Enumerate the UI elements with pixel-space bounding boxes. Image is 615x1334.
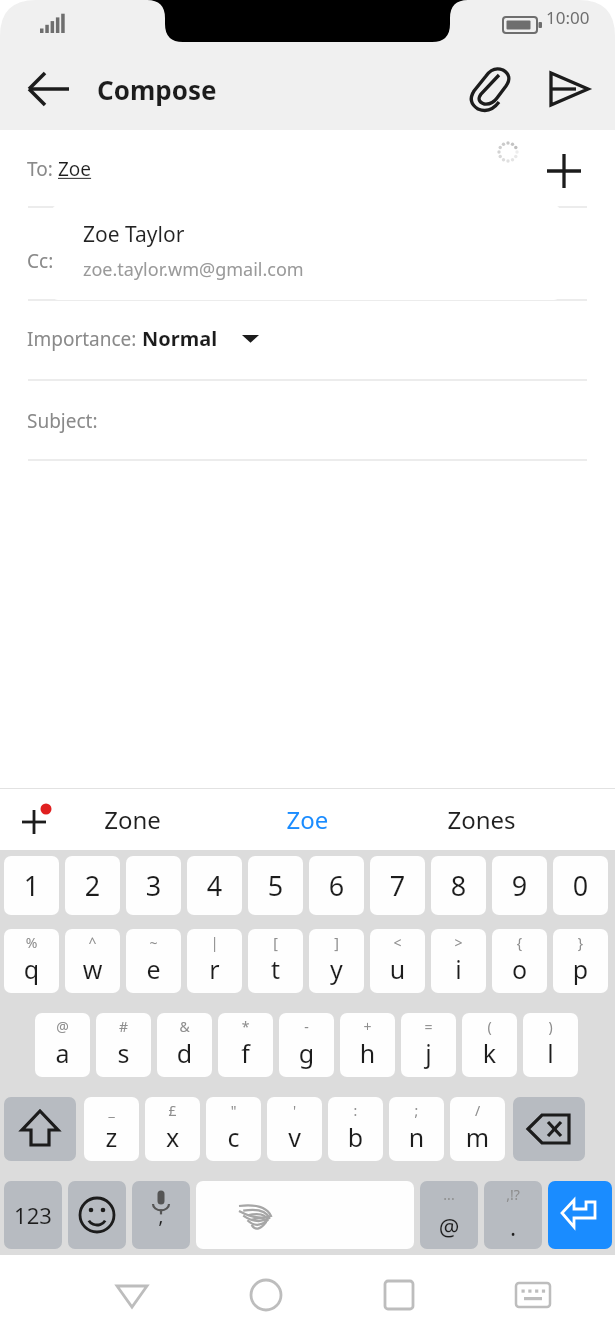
staticText: [ [248, 933, 303, 952]
button[interactable]: # [96, 1013, 151, 1077]
staticText: @ [35, 1017, 90, 1036]
staticText: Cc: [27, 248, 54, 274]
button[interactable]: ~ [126, 929, 181, 993]
button[interactable]: More suggestions [10, 795, 58, 843]
button[interactable]: Enter [548, 1181, 612, 1249]
button[interactable]: Importance: [27, 325, 259, 352]
staticText: 8 [431, 867, 486, 904]
staticText: 5 [248, 867, 303, 904]
staticText: } [553, 933, 608, 952]
button[interactable]: ,!? [484, 1181, 542, 1249]
staticText: 1 [4, 867, 59, 904]
button[interactable]: Zoe [245, 803, 370, 836]
staticText: 9 [492, 867, 547, 904]
staticText: # [96, 1017, 151, 1036]
button[interactable]: [ [248, 929, 303, 993]
button[interactable]: _ [84, 1097, 139, 1161]
button[interactable]: ' [267, 1097, 322, 1161]
staticText: _ [84, 1101, 139, 1120]
button[interactable]: Back [108, 1271, 156, 1319]
button[interactable]: / [450, 1097, 505, 1161]
button[interactable]: @ [35, 1013, 90, 1077]
button[interactable]: & [157, 1013, 212, 1077]
button[interactable]: Hide keyboard [509, 1271, 557, 1319]
staticText: £ [145, 1101, 200, 1120]
staticText: & [157, 1017, 212, 1036]
staticText: g [279, 1036, 334, 1070]
button[interactable]: £ [145, 1097, 200, 1161]
staticText: h [340, 1036, 395, 1070]
button[interactable]: To: [27, 156, 92, 182]
button[interactable]: Shift [4, 1097, 76, 1161]
staticText: @ [420, 1211, 478, 1242]
staticText: 6 [309, 867, 364, 904]
button[interactable]: { [492, 929, 547, 993]
staticText: ~ [126, 933, 181, 952]
button[interactable]: > [431, 929, 486, 993]
staticText: w [65, 952, 120, 986]
button[interactable]: 5 [248, 856, 303, 915]
button[interactable]: 8 [431, 856, 486, 915]
button[interactable]: ] [309, 929, 364, 993]
staticText: r [187, 952, 242, 986]
staticText: b [328, 1120, 383, 1154]
button[interactable]: * [218, 1013, 273, 1077]
button[interactable]: % [4, 929, 59, 993]
button[interactable]: Back [22, 63, 74, 115]
button[interactable]: Send [543, 64, 593, 114]
button[interactable]: = [401, 1013, 456, 1077]
staticText: 2 [65, 867, 120, 904]
button[interactable]: Recents [375, 1271, 423, 1319]
button[interactable]: ; [389, 1097, 444, 1161]
button[interactable]: ) [523, 1013, 578, 1077]
staticText: zoe.taylor.wm@gmail.com [83, 257, 304, 282]
button[interactable]: 9 [492, 856, 547, 915]
button[interactable]: 3 [126, 856, 181, 915]
button[interactable]: 4 [187, 856, 242, 915]
button[interactable]: | [187, 929, 242, 993]
staticText: a [35, 1036, 90, 1070]
staticText: Zoe Taylor [83, 220, 185, 249]
staticText: 4 [187, 867, 242, 904]
staticText: ' [267, 1101, 322, 1120]
button[interactable]: 1 [4, 856, 59, 915]
button[interactable]: } [553, 929, 608, 993]
staticText: ) [523, 1017, 578, 1036]
staticText: n [389, 1120, 444, 1154]
button[interactable]: 2 [65, 856, 120, 915]
button[interactable]: Voice input [132, 1181, 190, 1249]
button[interactable]: ( [462, 1013, 517, 1077]
button[interactable]: Zones [419, 803, 544, 836]
button[interactable]: < [370, 929, 425, 993]
staticText: > [431, 933, 486, 952]
staticText: v [267, 1120, 322, 1154]
button[interactable]: Backspace [513, 1097, 585, 1161]
button[interactable]: 7 [370, 856, 425, 915]
button[interactable]: Zoe Taylor [52, 205, 560, 300]
button[interactable]: 123 [4, 1181, 62, 1249]
staticText: m [450, 1120, 505, 1154]
button[interactable]: Emoji [68, 1181, 126, 1249]
button[interactable]: ... [420, 1181, 478, 1249]
staticText: ... [420, 1185, 478, 1204]
button[interactable]: - [279, 1013, 334, 1077]
button[interactable]: 6 [309, 856, 364, 915]
button[interactable]: Attach file [465, 64, 515, 114]
button[interactable]: : [328, 1097, 383, 1161]
staticText: y [309, 952, 364, 986]
staticText: / [450, 1101, 505, 1120]
button[interactable]: Zone [70, 803, 195, 836]
button[interactable]: 0 [553, 856, 608, 915]
staticText: c [206, 1120, 261, 1154]
staticText: Importance: [27, 326, 142, 352]
staticText: { [492, 933, 547, 952]
button[interactable]: + [340, 1013, 395, 1077]
staticText: x [145, 1120, 200, 1154]
button[interactable]: Add recipient [538, 145, 590, 197]
button[interactable]: Space [196, 1181, 414, 1249]
staticText: p [553, 952, 608, 986]
button[interactable]: Home [242, 1271, 290, 1319]
button[interactable]: " [206, 1097, 261, 1161]
button[interactable]: ^ [65, 929, 120, 993]
staticText: = [401, 1017, 456, 1036]
